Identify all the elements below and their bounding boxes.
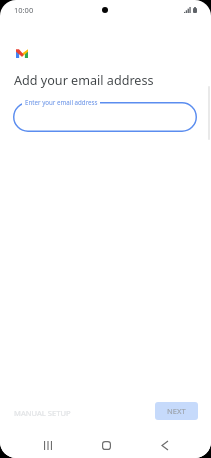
button[interactable]: Home: [86, 435, 126, 455]
button[interactable]: Back: [145, 435, 185, 455]
staticText: Add your email address: [14, 72, 154, 89]
button[interactable]: Recent apps: [28, 435, 68, 455]
button[interactable]: MANUAL SETUP: [8, 404, 77, 422]
staticText: 10:00: [14, 5, 34, 15]
button[interactable]: NEXT: [155, 402, 198, 420]
staticText: MANUAL SETUP: [14, 408, 71, 418]
staticText: Enter your email address: [25, 98, 98, 106]
staticText: NEXT: [167, 406, 186, 416]
button[interactable]: Enter your email address: [13, 102, 197, 132]
